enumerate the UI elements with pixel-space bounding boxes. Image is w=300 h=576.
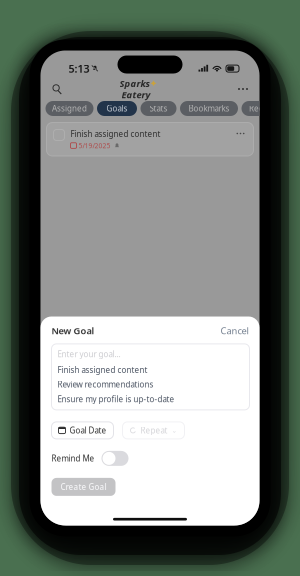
staticText: Review recommendations [57, 379, 153, 390]
staticText: Cancel [220, 324, 248, 337]
staticText: Finish assigned content [70, 128, 160, 139]
staticText: Bookmarks [188, 103, 229, 114]
button[interactable]: Create Goal [51, 478, 115, 496]
staticText: Ensure my profile is up-to-date [57, 394, 174, 404]
staticText: Goals [106, 103, 127, 114]
staticText: Assigned [52, 103, 87, 114]
staticText: Create Goal [60, 482, 106, 492]
staticText: Finish assigned content [57, 364, 147, 375]
staticText: 5/19/2025 [78, 141, 110, 150]
button[interactable]: Finish assigned content [46, 122, 253, 156]
staticText: Stats [149, 103, 167, 114]
button[interactable]: Goal Date [51, 422, 113, 439]
button[interactable]: Remind Me [101, 451, 128, 466]
staticText: Recent [249, 103, 276, 114]
button[interactable]: Repeat [122, 422, 184, 439]
staticText: Remind Me [51, 453, 94, 464]
staticText: New Goal [51, 324, 94, 337]
staticText: Repeat [140, 425, 167, 436]
staticText: 5:13 [68, 61, 89, 76]
button[interactable]: Recent [241, 101, 283, 116]
staticText: Sparks [119, 77, 149, 89]
button[interactable]: Goals [97, 101, 137, 116]
button[interactable]: Bookmarks [180, 101, 238, 116]
button[interactable]: Cancel [220, 324, 248, 337]
button[interactable]: Assigned [45, 101, 93, 116]
staticText: ⌄ [171, 427, 177, 434]
staticText: Eatery [121, 88, 150, 101]
button[interactable]: More [232, 79, 253, 98]
staticText: Enter your goal... [57, 349, 120, 359]
staticText: Goal Date [69, 425, 106, 436]
button[interactable]: Stats [140, 101, 176, 116]
button[interactable]: Search [46, 79, 67, 98]
